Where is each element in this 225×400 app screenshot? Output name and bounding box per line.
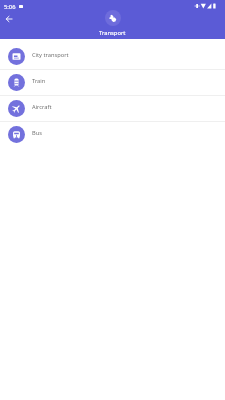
staticText: 5:06: [4, 3, 16, 11]
button[interactable]: Aircraft: [0, 95, 225, 121]
button[interactable]: Back: [1, 11, 17, 27]
staticText: Bus: [32, 129, 42, 137]
button[interactable]: Train: [0, 69, 225, 95]
button[interactable]: Transport logo: [105, 10, 121, 26]
staticText: Aircraft: [32, 103, 52, 111]
button[interactable]: City transport: [0, 43, 225, 69]
staticText: Transport: [99, 29, 126, 37]
button[interactable]: Bus: [0, 121, 225, 147]
staticText: City transport: [32, 51, 69, 59]
staticText: Train: [32, 77, 46, 85]
